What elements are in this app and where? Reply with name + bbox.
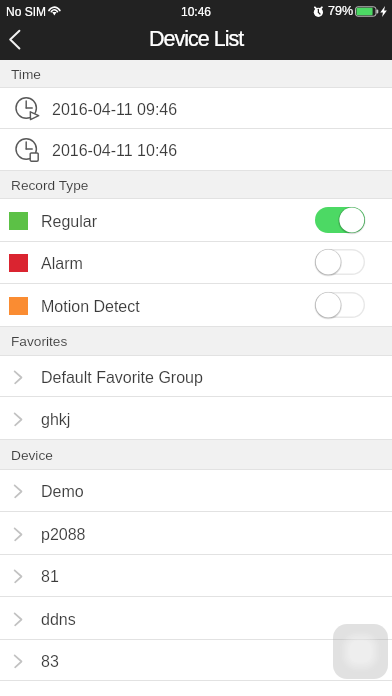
button[interactable]: Demo: [0, 470, 392, 512]
staticText: 79%: [328, 4, 354, 18]
staticText: Motion Detect: [41, 298, 140, 316]
button[interactable]: Off: [314, 291, 366, 319]
button[interactable]: 2016-04-11 10:46: [0, 129, 392, 171]
staticText: p2088: [41, 526, 86, 544]
staticText: ghkj: [41, 411, 71, 429]
staticText: Alarm: [41, 255, 83, 273]
button[interactable]: ghkj: [0, 397, 392, 440]
staticText: 2016-04-11 10:46: [52, 142, 178, 160]
button[interactable]: 81: [0, 555, 392, 597]
staticText: 81: [41, 568, 59, 586]
button[interactable]: ddns: [0, 597, 392, 640]
button[interactable]: p2088: [0, 512, 392, 555]
button[interactable]: Off: [314, 248, 366, 276]
button[interactable]: 2016-04-11 09:46: [0, 88, 392, 129]
staticText: 10:46: [181, 5, 212, 18]
button[interactable]: Default Favorite Group: [0, 356, 392, 397]
staticText: Record Type: [11, 178, 89, 193]
button[interactable]: Back: [4, 25, 34, 55]
staticText: Device List: [149, 27, 244, 51]
button[interactable]: Regular: [0, 199, 392, 242]
button[interactable]: Assistive touch: [333, 624, 388, 679]
button[interactable]: On: [314, 206, 366, 234]
button[interactable]: 83: [0, 640, 392, 681]
staticText: No SIM: [6, 5, 47, 18]
staticText: Device: [11, 448, 53, 463]
staticText: Time: [11, 67, 41, 82]
staticText: Regular: [41, 213, 98, 231]
staticText: Demo: [41, 483, 84, 501]
staticText: 2016-04-11 09:46: [52, 101, 178, 119]
staticText: Default Favorite Group: [41, 369, 203, 387]
staticText: ddns: [41, 611, 76, 629]
staticText: 83: [41, 653, 59, 671]
button[interactable]: Motion Detect: [0, 284, 392, 327]
staticText: Favorites: [11, 334, 68, 349]
button[interactable]: Alarm: [0, 242, 392, 284]
